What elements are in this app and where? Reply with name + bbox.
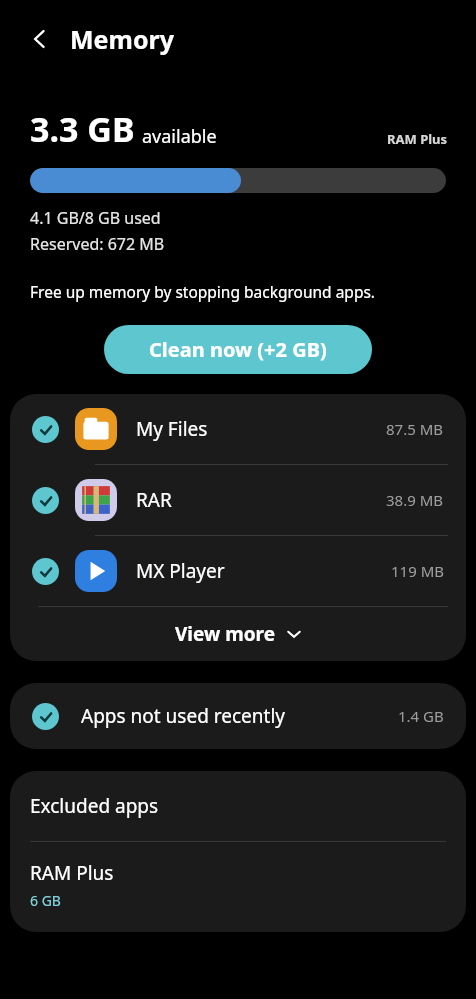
staticText: 3.3 GB — [30, 106, 135, 152]
button[interactable]: Apps not used recently — [10, 683, 466, 749]
staticText: MX Player — [136, 558, 225, 584]
staticText: 1.4 GB — [398, 706, 444, 726]
staticText: Apps not used recently — [81, 703, 285, 729]
button[interactable]: Clean now (+2 GB) — [104, 325, 372, 374]
staticText: 87.5 MB — [386, 419, 444, 439]
staticText: Clean now (+2 GB) — [149, 336, 327, 363]
staticText: Reserved: 672 MB — [30, 233, 165, 255]
staticText: 4.1 GB/8 GB used — [30, 207, 161, 229]
button[interactable]: Excluded apps — [10, 771, 466, 841]
staticText: 119 MB — [391, 561, 444, 581]
staticText: My Files — [136, 416, 208, 442]
staticText: Free up memory by stopping background ap… — [30, 281, 376, 302]
staticText: View more — [175, 621, 276, 647]
staticText: 38.9 MB — [386, 490, 444, 510]
staticText: RAR — [136, 487, 172, 513]
staticText: 6 GB — [30, 891, 61, 910]
button[interactable]: RAR — [10, 465, 466, 535]
staticText: Excluded apps — [30, 793, 159, 819]
staticText: Memory — [70, 22, 174, 56]
button[interactable]: View more — [10, 607, 466, 661]
staticText: RAM Plus — [30, 860, 114, 886]
button[interactable]: RAM Plus — [10, 842, 466, 932]
button[interactable]: My Files — [10, 394, 466, 464]
staticText: available — [142, 124, 217, 149]
button[interactable]: Back — [18, 17, 62, 61]
button[interactable]: MX Player — [10, 536, 466, 606]
staticText: RAM Plus — [387, 130, 448, 148]
